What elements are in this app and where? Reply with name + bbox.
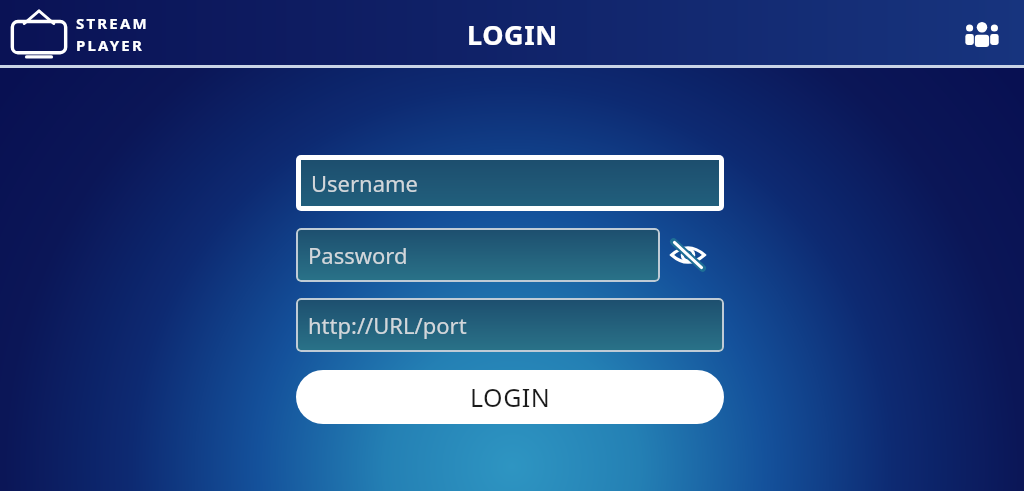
staticText: STREAM: [76, 13, 149, 33]
button[interactable]: Username: [301, 160, 719, 206]
staticText: Password: [308, 240, 408, 270]
staticText: PLAYER: [76, 35, 145, 55]
button[interactable]: Show password: [664, 231, 712, 279]
staticText: Username: [311, 168, 419, 198]
staticText: LOGIN: [467, 16, 558, 53]
staticText: LOGIN: [470, 380, 551, 414]
button[interactable]: Accounts: [958, 10, 1006, 58]
button[interactable]: LOGIN: [296, 370, 724, 424]
staticText: http://URL/port: [308, 310, 467, 340]
button[interactable]: Password: [296, 228, 660, 282]
button[interactable]: http://URL/port: [296, 298, 724, 352]
button[interactable]: IPTV Stream Player: [8, 8, 149, 60]
